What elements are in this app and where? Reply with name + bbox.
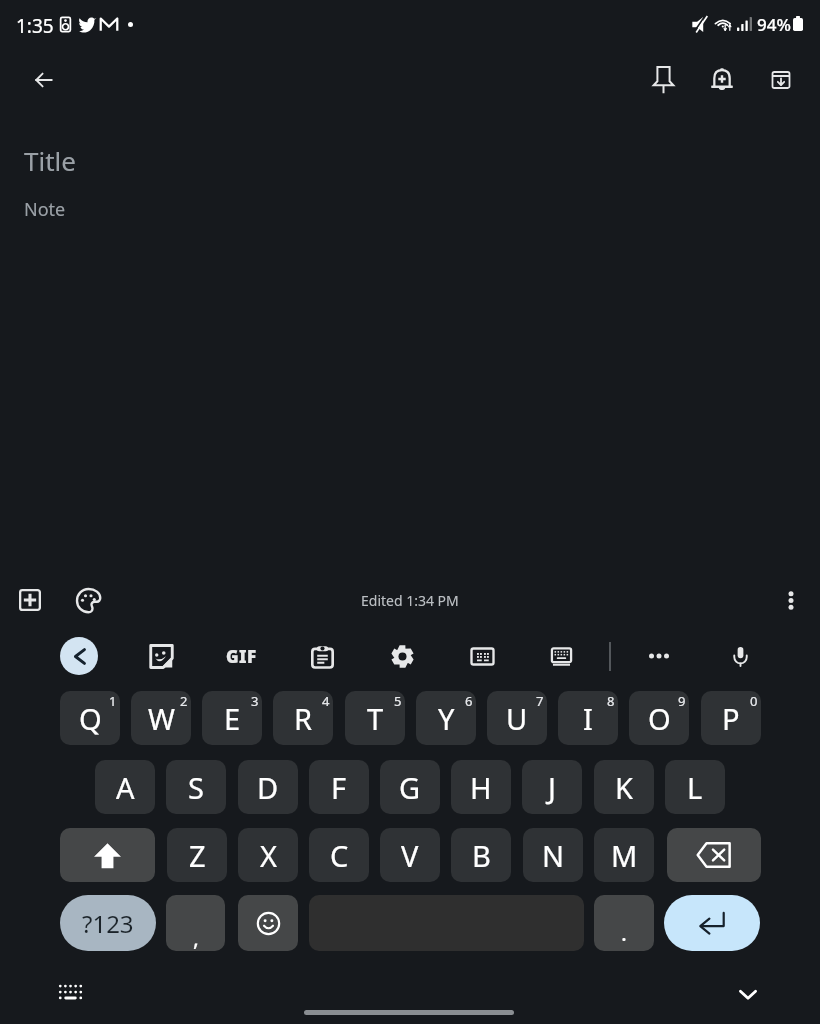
- staticText: W: [148, 699, 175, 738]
- button[interactable]: W: [131, 691, 191, 745]
- staticText: 8: [607, 692, 615, 710]
- button[interactable]: Y: [416, 691, 476, 745]
- button[interactable]: Keyboard modes: [539, 634, 583, 678]
- staticText: S: [188, 768, 204, 807]
- button[interactable]: Title: [24, 143, 76, 178]
- button[interactable]: E: [202, 691, 262, 745]
- button[interactable]: Q: [60, 691, 120, 745]
- button[interactable]: More options: [769, 578, 813, 622]
- button[interactable]: Stickers: [139, 634, 183, 678]
- button[interactable]: More: [637, 634, 681, 678]
- button[interactable]: Switch language: [46, 968, 94, 1016]
- button[interactable]: V: [380, 828, 440, 882]
- button[interactable]: F: [309, 760, 369, 814]
- button[interactable]: ?123: [60, 895, 156, 951]
- button[interactable]: Back: [20, 56, 68, 104]
- button[interactable]: O: [629, 691, 689, 745]
- staticText: 4: [322, 692, 330, 710]
- staticText: L: [687, 768, 703, 807]
- staticText: F: [331, 768, 347, 807]
- button[interactable]: Voice input: [718, 634, 762, 678]
- staticText: R: [294, 699, 313, 738]
- staticText: 1: [109, 692, 117, 710]
- staticText: N: [542, 836, 565, 875]
- staticText: Z: [189, 836, 206, 875]
- button[interactable]: Enter: [664, 895, 760, 951]
- button[interactable]: Backspace: [667, 828, 761, 882]
- button[interactable]: K: [594, 760, 654, 814]
- staticText: 1:35: [16, 13, 54, 39]
- button[interactable]: D: [238, 760, 298, 814]
- staticText: GIF: [226, 645, 257, 668]
- button[interactable]: Pin: [639, 55, 687, 103]
- staticText: 5: [394, 692, 402, 710]
- staticText: 2: [180, 692, 188, 710]
- staticText: G: [399, 768, 421, 807]
- staticText: X: [260, 836, 277, 875]
- button[interactable]: Archive: [757, 56, 805, 104]
- staticText: ?123: [82, 907, 134, 940]
- button[interactable]: Settings: [380, 634, 424, 678]
- button[interactable]: Reminder: [698, 55, 746, 103]
- staticText: A: [116, 768, 135, 807]
- button[interactable]: I: [558, 691, 618, 745]
- staticText: U: [506, 699, 528, 738]
- staticText: I: [583, 699, 593, 738]
- staticText: 3: [251, 692, 259, 710]
- staticText: Q: [79, 699, 102, 738]
- button[interactable]: X: [238, 828, 298, 882]
- staticText: M: [611, 836, 638, 875]
- staticText: E: [224, 699, 241, 738]
- button[interactable]: U: [487, 691, 547, 745]
- staticText: Y: [438, 699, 455, 738]
- button[interactable]: GIF: [219, 634, 263, 678]
- button[interactable]: Hide keyboard: [724, 970, 772, 1018]
- staticText: D: [257, 768, 279, 807]
- staticText: 94%: [757, 13, 791, 36]
- staticText: V: [401, 836, 419, 875]
- staticText: 7: [536, 692, 544, 710]
- staticText: O: [648, 699, 671, 738]
- button[interactable]: C: [309, 828, 369, 882]
- staticText: .: [621, 917, 627, 947]
- button[interactable]: B: [451, 828, 511, 882]
- button[interactable]: M: [594, 828, 654, 882]
- staticText: 0: [750, 692, 758, 710]
- staticText: ,: [193, 922, 199, 951]
- button[interactable]: Clipboard: [300, 634, 344, 678]
- button[interactable]: Add: [8, 578, 52, 622]
- staticText: T: [367, 699, 384, 738]
- button[interactable]: One-handed keyboard: [460, 634, 504, 678]
- button[interactable]: T: [345, 691, 405, 745]
- staticText: K: [615, 768, 633, 807]
- staticText: H: [470, 768, 492, 807]
- staticText: 6: [465, 692, 473, 710]
- staticText: J: [548, 768, 556, 807]
- button[interactable]: N: [523, 828, 583, 882]
- button[interactable]: Shift: [60, 828, 155, 882]
- button[interactable]: R: [273, 691, 333, 745]
- button[interactable]: Note: [24, 197, 66, 222]
- staticText: 9: [678, 692, 686, 710]
- button[interactable]: ,: [166, 895, 225, 951]
- button[interactable]: Z: [167, 828, 227, 882]
- staticText: P: [722, 699, 740, 738]
- button[interactable]: H: [451, 760, 511, 814]
- button[interactable]: A: [95, 760, 155, 814]
- button[interactable]: P: [701, 691, 761, 745]
- button[interactable]: Colour palette: [66, 578, 110, 622]
- button[interactable]: J: [522, 760, 582, 814]
- button[interactable]: G: [380, 760, 440, 814]
- button[interactable]: .: [594, 895, 654, 951]
- button[interactable]: Back: [60, 637, 98, 675]
- staticText: B: [472, 836, 491, 875]
- staticText: C: [330, 836, 349, 875]
- button[interactable]: L: [665, 760, 725, 814]
- staticText: Edited 1:34 PM: [361, 591, 459, 610]
- button[interactable]: S: [166, 760, 226, 814]
- button[interactable]: Emoji: [238, 895, 298, 951]
